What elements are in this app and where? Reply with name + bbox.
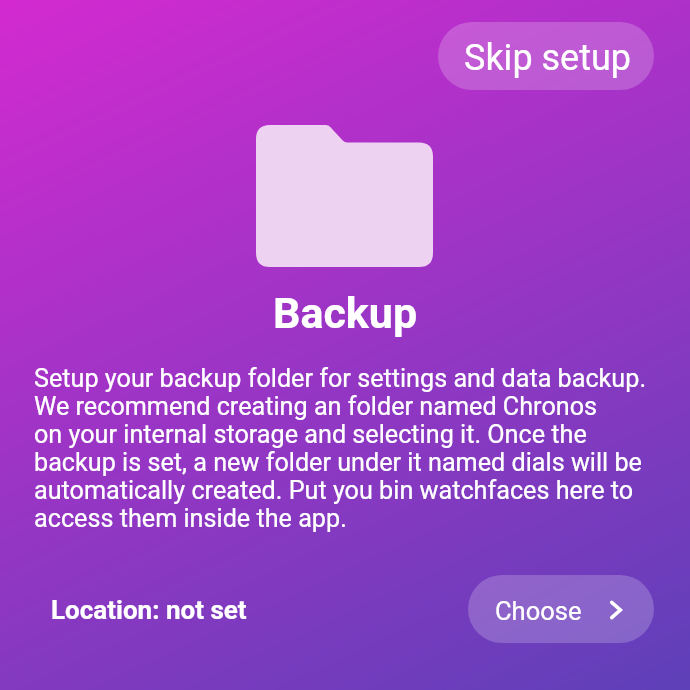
staticText: Setup your backup folder for settings an… [34, 364, 647, 534]
staticText: Skip setup [464, 37, 632, 79]
other: Choose backup folder [608, 599, 624, 621]
staticText: Backup [273, 288, 418, 338]
staticText: Choose [495, 596, 582, 626]
staticText: Location: not set [51, 595, 247, 625]
button[interactable]: Choose [468, 575, 654, 643]
button[interactable]: Skip setup [438, 22, 654, 90]
